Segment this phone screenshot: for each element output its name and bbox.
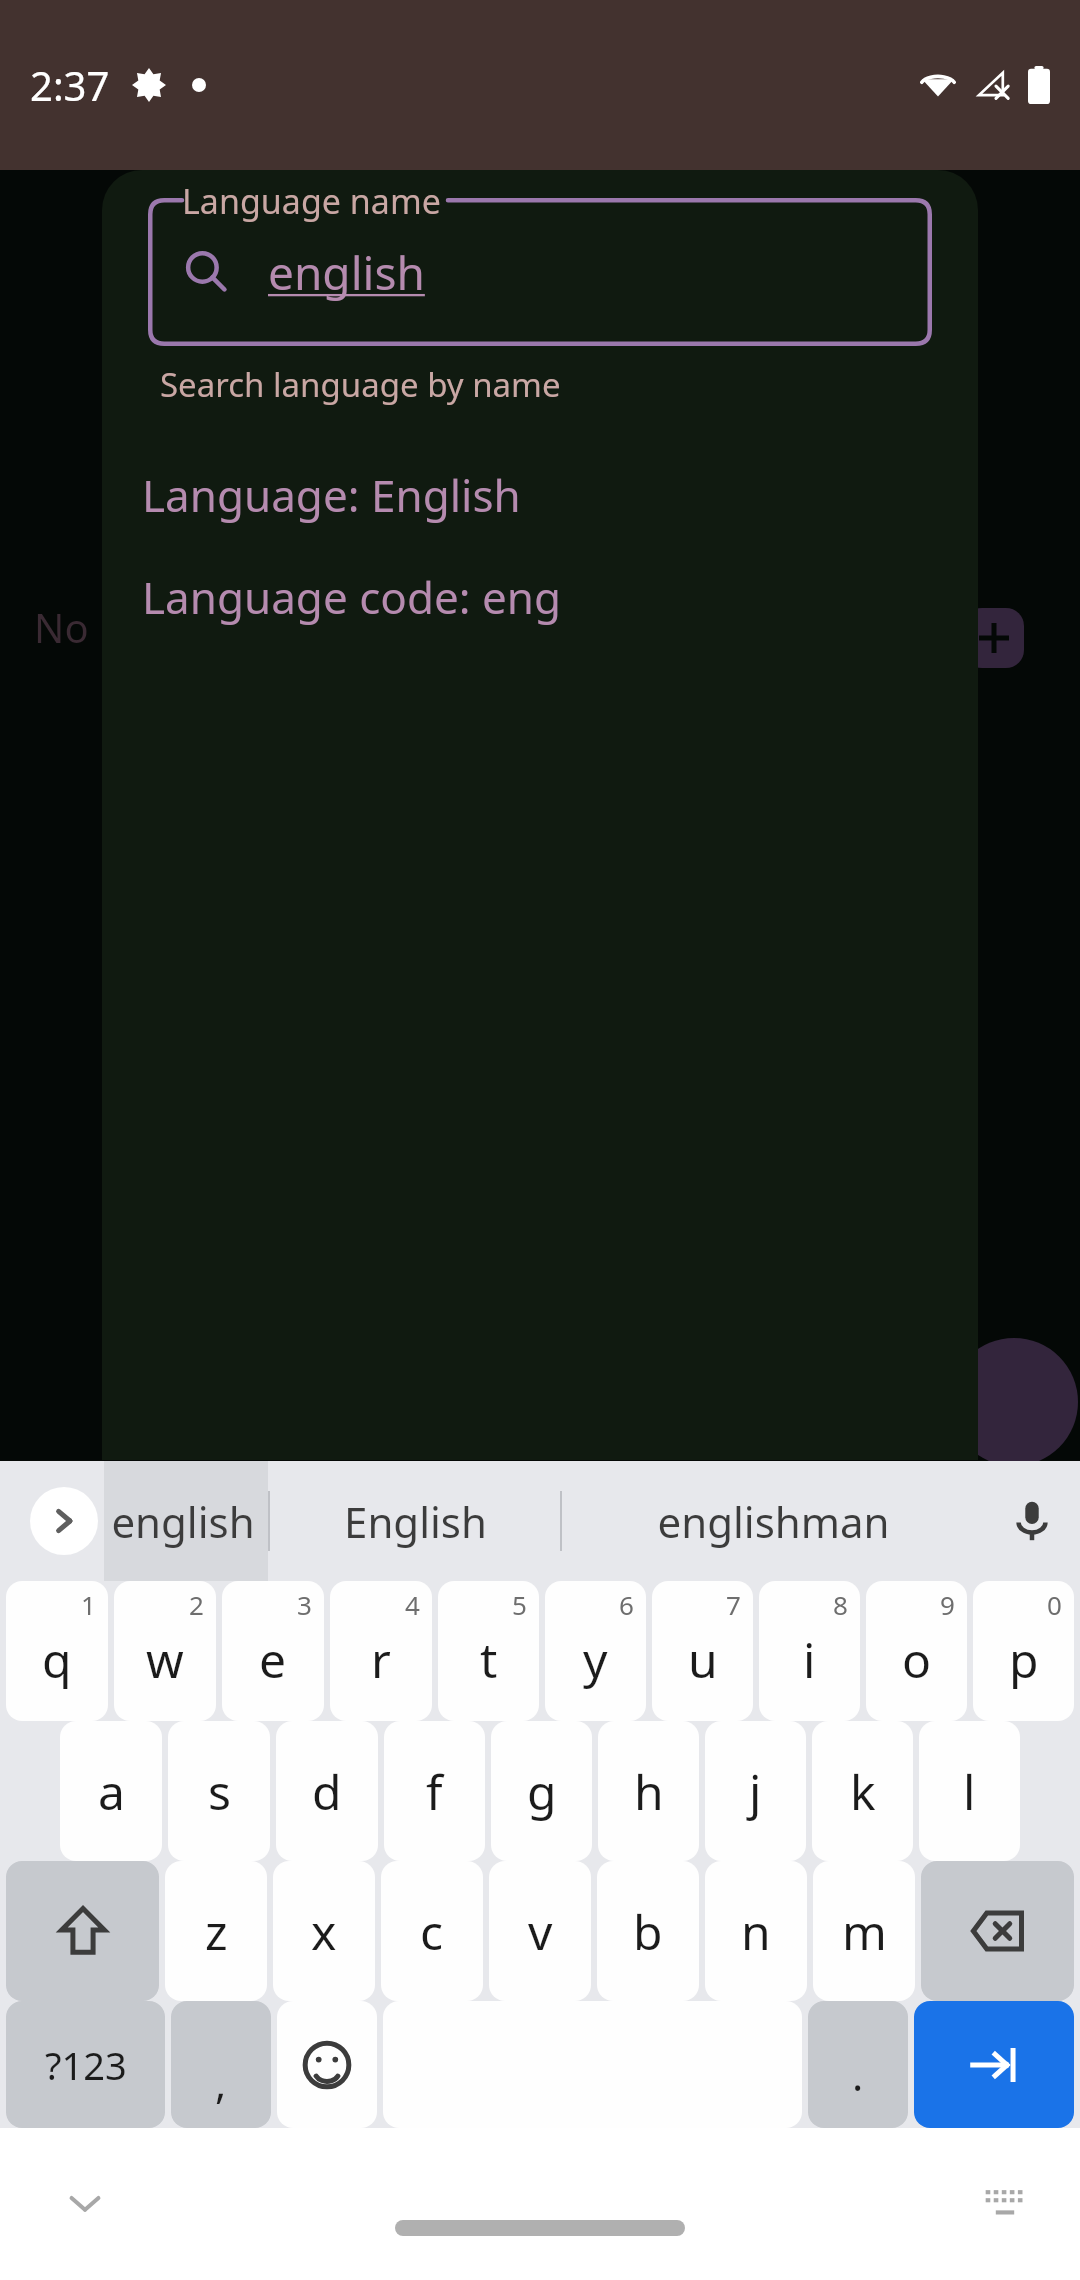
staticText: g xyxy=(527,1759,557,1824)
button[interactable]: ?123 xyxy=(6,2001,165,2128)
button[interactable]: z xyxy=(165,1861,267,2001)
button[interactable]: c xyxy=(381,1861,483,2001)
button[interactable]: 3 xyxy=(222,1581,324,1721)
staticText: Language: English xyxy=(142,465,521,525)
button[interactable]: Language name xyxy=(148,198,932,346)
button[interactable]: . xyxy=(808,2001,908,2128)
button[interactable] xyxy=(277,2001,377,2128)
button[interactable]: Enter xyxy=(914,2001,1074,2128)
button[interactable]: 8 xyxy=(759,1581,860,1721)
staticText: 0 xyxy=(1047,1587,1062,1622)
button[interactable]: More suggestions xyxy=(30,1487,98,1555)
button[interactable]: g xyxy=(491,1721,592,1861)
button[interactable]: Hide keyboard xyxy=(40,2158,130,2248)
button[interactable]: f xyxy=(384,1721,485,1861)
button[interactable]: x xyxy=(273,1861,375,2001)
staticText: a xyxy=(98,1759,125,1824)
button[interactable]: d xyxy=(276,1721,378,1861)
button[interactable]: Switch keyboard xyxy=(960,2158,1050,2248)
button[interactable]: b xyxy=(597,1861,699,2001)
staticText: English xyxy=(344,1493,487,1550)
staticText: 5 xyxy=(512,1587,527,1622)
staticText: No xyxy=(34,600,89,654)
staticText: 3 xyxy=(297,1587,312,1622)
staticText: 2:37 xyxy=(30,58,110,112)
button[interactable]: English xyxy=(270,1461,560,1581)
staticText: english xyxy=(268,241,425,304)
button[interactable]: j xyxy=(705,1721,806,1861)
button[interactable]: s xyxy=(168,1721,270,1861)
button[interactable]: a xyxy=(60,1721,162,1861)
staticText: 9 xyxy=(940,1587,955,1622)
staticText: o xyxy=(902,1627,932,1692)
button[interactable]: 1 xyxy=(6,1581,108,1721)
staticText: v xyxy=(528,1899,553,1964)
staticText: Language code: eng xyxy=(142,567,562,627)
staticText: englishman xyxy=(657,1493,890,1550)
staticText: s xyxy=(208,1759,231,1824)
button[interactable]: englishman xyxy=(562,1461,984,1581)
staticText: w xyxy=(146,1627,184,1692)
staticText: h xyxy=(634,1759,664,1824)
staticText: x xyxy=(311,1899,337,1964)
button[interactable]: k xyxy=(812,1721,913,1861)
button[interactable]: Backspace xyxy=(921,1861,1074,2001)
staticText: ?123 xyxy=(45,2039,127,2091)
staticText: y xyxy=(583,1627,608,1692)
staticText: p xyxy=(1009,1627,1039,1692)
staticText: f xyxy=(426,1759,443,1824)
staticText: Language name xyxy=(182,178,441,224)
button[interactable]: 2 xyxy=(114,1581,216,1721)
staticText: english xyxy=(111,1493,255,1550)
button[interactable]: h xyxy=(598,1721,699,1861)
staticText: 1 xyxy=(81,1587,96,1622)
button[interactable]: english xyxy=(98,1461,268,1581)
button[interactable]: Shift xyxy=(6,1861,159,2001)
button[interactable]: v xyxy=(489,1861,591,2001)
staticText: z xyxy=(205,1899,228,1964)
staticText: . xyxy=(852,2046,864,2103)
staticText: i xyxy=(803,1627,816,1692)
staticText: 4 xyxy=(405,1587,420,1622)
staticText: l xyxy=(963,1759,976,1824)
staticText: 6 xyxy=(619,1587,634,1622)
button[interactable]: 0 xyxy=(973,1581,1074,1721)
button[interactable]: l xyxy=(919,1721,1020,1861)
button[interactable]: 6 xyxy=(545,1581,646,1721)
staticText: m xyxy=(842,1899,887,1964)
staticText: q xyxy=(42,1627,72,1692)
staticText: b xyxy=(633,1899,663,1964)
button[interactable]: Voice input xyxy=(984,1461,1080,1581)
staticText: t xyxy=(480,1627,498,1692)
staticText: d xyxy=(312,1759,342,1824)
button[interactable]: 4 xyxy=(330,1581,432,1721)
staticText: 8 xyxy=(833,1587,848,1622)
staticText: u xyxy=(688,1627,718,1692)
staticText: r xyxy=(371,1627,391,1692)
staticText: k xyxy=(850,1759,876,1824)
button[interactable]: , xyxy=(171,2001,271,2128)
button[interactable]: 9 xyxy=(866,1581,967,1721)
staticText: 2 xyxy=(189,1587,204,1622)
button[interactable]: 7 xyxy=(652,1581,753,1721)
staticText: e xyxy=(259,1627,287,1692)
button[interactable]: m xyxy=(813,1861,915,2001)
staticText: n xyxy=(741,1899,771,1964)
button[interactable]: n xyxy=(705,1861,807,2001)
button[interactable]: 5 xyxy=(438,1581,539,1721)
staticText: c xyxy=(420,1899,444,1964)
staticText: , xyxy=(215,2054,227,2111)
staticText: j xyxy=(749,1759,762,1824)
staticText: Search language by name xyxy=(160,362,561,407)
staticText: 7 xyxy=(726,1587,741,1622)
